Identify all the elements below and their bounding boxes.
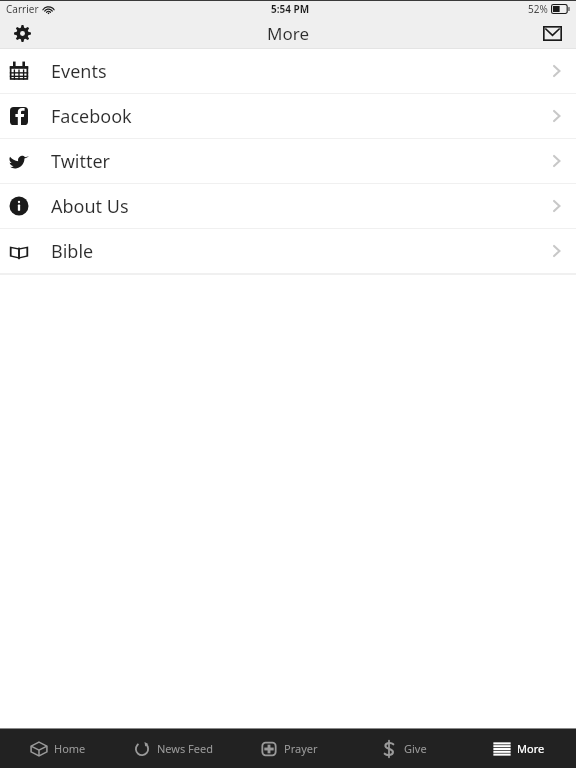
staticText: Twitter bbox=[51, 149, 111, 174]
button[interactable]: Give bbox=[346, 729, 461, 768]
button[interactable]: Bible bbox=[0, 229, 576, 273]
staticText: Prayer bbox=[284, 741, 318, 756]
button[interactable]: Prayer bbox=[231, 729, 346, 768]
staticText: Events bbox=[51, 59, 107, 84]
staticText: Facebook bbox=[51, 104, 132, 129]
button[interactable]: Facebook bbox=[0, 94, 576, 138]
button[interactable]: Events bbox=[0, 49, 576, 93]
staticText: Give bbox=[404, 741, 427, 756]
staticText: Home bbox=[54, 741, 86, 756]
button[interactable]: Settings bbox=[0, 18, 44, 48]
staticText: Bible bbox=[51, 239, 94, 264]
button[interactable]: Twitter bbox=[0, 139, 576, 183]
staticText: 5:54 PM bbox=[271, 2, 310, 16]
staticText: 52% bbox=[528, 2, 548, 16]
button[interactable]: Home bbox=[0, 729, 116, 768]
staticText: About Us bbox=[51, 194, 129, 219]
button[interactable]: About Us bbox=[0, 184, 576, 228]
staticText: More bbox=[267, 22, 309, 45]
staticText: Carrier bbox=[6, 2, 39, 16]
button[interactable]: News Feed bbox=[116, 729, 231, 768]
button[interactable]: More bbox=[461, 729, 576, 768]
staticText: News Feed bbox=[157, 741, 214, 756]
button[interactable]: Mail bbox=[528, 18, 576, 48]
staticText: More bbox=[517, 741, 545, 756]
